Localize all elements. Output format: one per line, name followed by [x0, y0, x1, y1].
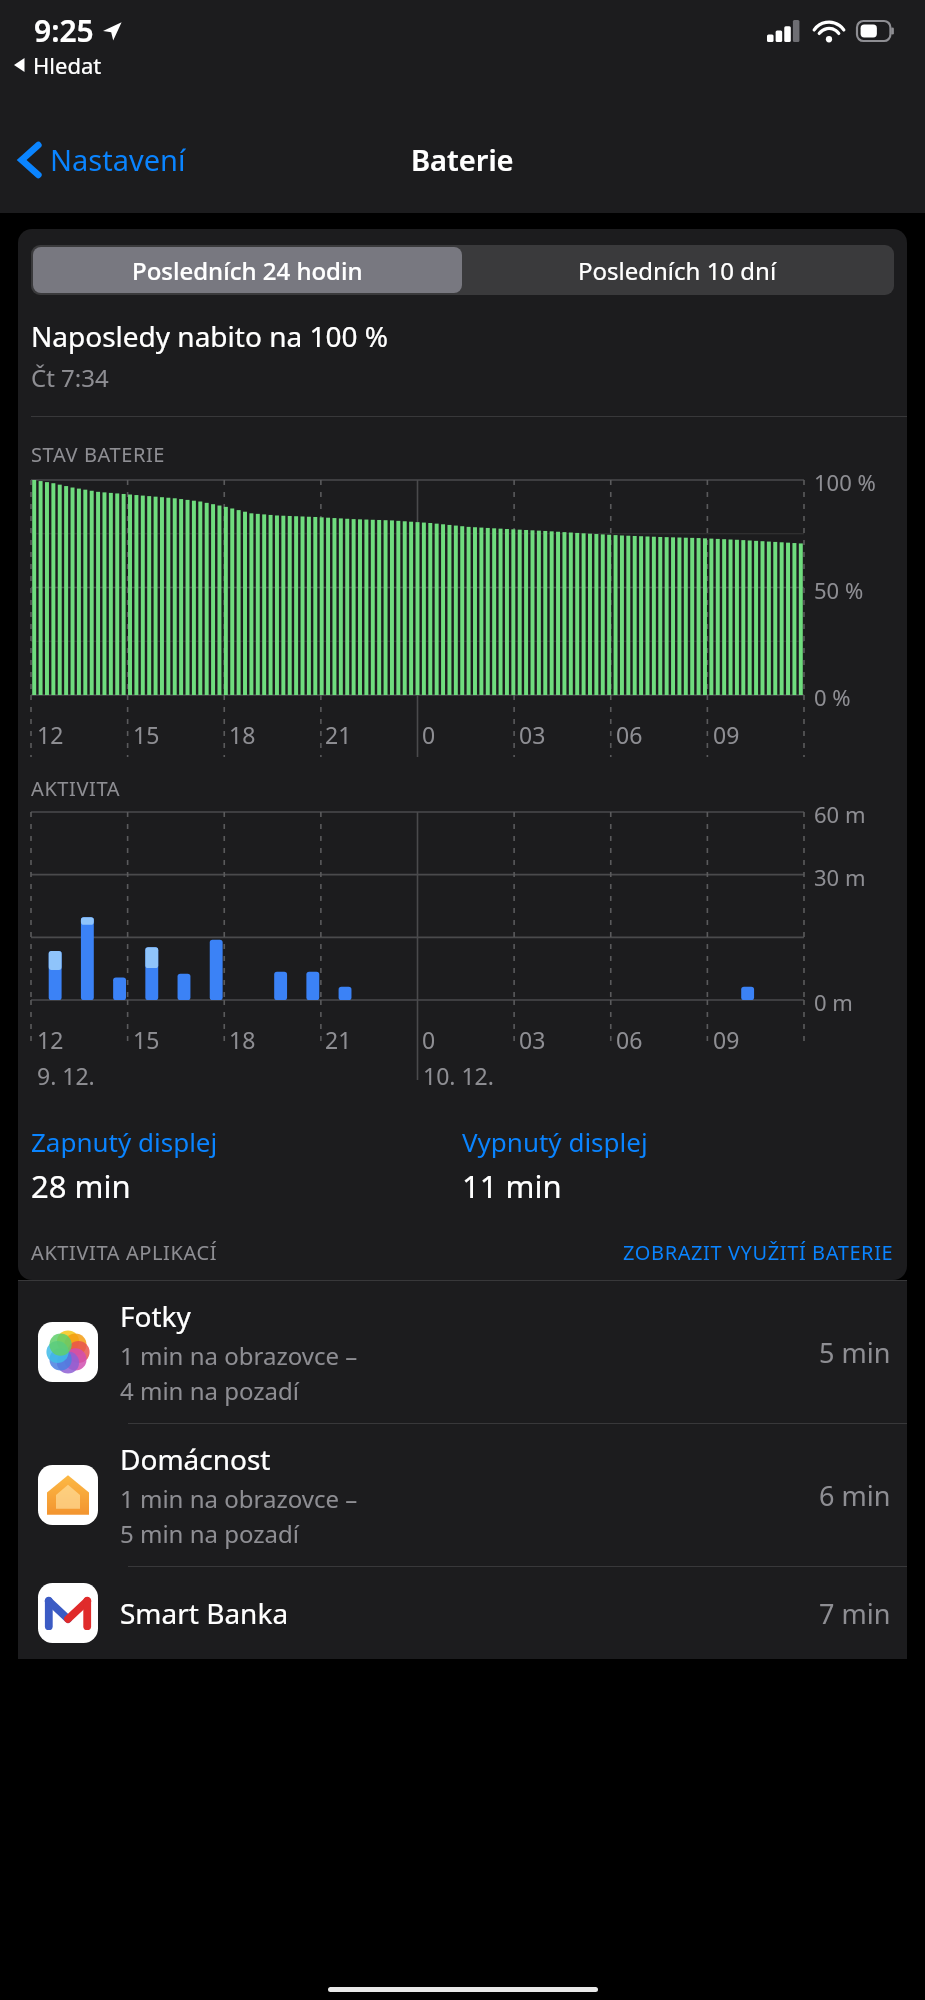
- staticText: Posledních 10 dní: [578, 254, 777, 287]
- staticText: 09: [713, 1024, 740, 1055]
- staticText: 0 %: [814, 682, 851, 712]
- staticText: 15: [133, 719, 160, 750]
- staticText: 5 min na pozadí: [120, 1517, 299, 1550]
- staticText: 0: [422, 1024, 436, 1055]
- staticText: 06: [616, 1024, 643, 1055]
- staticText: 21: [325, 1024, 352, 1055]
- staticText: 03: [519, 719, 546, 750]
- button[interactable]: Nastavení: [14, 132, 192, 187]
- staticText: 12: [37, 1024, 64, 1055]
- staticText: Zapnutý displej: [31, 1124, 218, 1159]
- staticText: AKTIVITA: [31, 775, 121, 802]
- button[interactable]: Domácnost: [18, 1424, 907, 1566]
- staticText: 30 m: [814, 862, 866, 892]
- staticText: 6 min: [819, 1477, 891, 1514]
- staticText: 60 m: [814, 799, 866, 829]
- staticText: Fotky: [120, 1297, 191, 1335]
- staticText: STAV BATERIE: [31, 441, 166, 468]
- staticText: 12: [37, 719, 64, 750]
- staticText: 9:25: [34, 10, 94, 51]
- staticText: Posledních 24 hodin: [132, 254, 363, 287]
- staticText: Domácnost: [120, 1440, 271, 1478]
- staticText: Čt 7:34: [31, 361, 109, 394]
- staticText: 18: [229, 719, 256, 750]
- staticText: 4 min na pozadí: [120, 1374, 299, 1407]
- staticText: Nastavení: [50, 140, 186, 179]
- button[interactable]: Smart Banka: [18, 1567, 907, 1659]
- button[interactable]: ZOBRAZIT VYUŽITÍ BATERIE: [623, 1239, 894, 1266]
- staticText: 28 min: [31, 1165, 131, 1207]
- staticText: 0: [422, 719, 436, 750]
- staticText: 10. 12.: [423, 1060, 494, 1091]
- staticText: Smart Banka: [120, 1594, 289, 1632]
- staticText: 100 %: [814, 467, 876, 497]
- staticText: 03: [519, 1024, 546, 1055]
- staticText: 9. 12.: [37, 1060, 95, 1091]
- staticText: Hledat: [33, 50, 102, 80]
- staticText: 7 min: [819, 1595, 891, 1632]
- staticText: 21: [325, 719, 352, 750]
- button[interactable]: Posledních 10 dní: [462, 247, 892, 293]
- staticText: Naposledy nabito na 100 %: [31, 317, 389, 355]
- staticText: 1 min na obrazovce –: [120, 1339, 358, 1372]
- staticText: 11 min: [462, 1165, 562, 1207]
- staticText: Baterie: [411, 140, 514, 179]
- staticText: 0 m: [814, 987, 853, 1017]
- staticText: 50 %: [814, 575, 864, 605]
- staticText: 09: [713, 719, 740, 750]
- staticText: 5 min: [819, 1334, 891, 1371]
- staticText: 06: [616, 719, 643, 750]
- staticText: AKTIVITA APLIKACÍ: [31, 1239, 218, 1266]
- staticText: 15: [133, 1024, 160, 1055]
- button[interactable]: Posledních 24 hodin: [33, 247, 462, 293]
- button[interactable]: Fotky: [18, 1281, 907, 1423]
- staticText: Vypnutý displej: [462, 1124, 648, 1159]
- staticText: ZOBRAZIT VYUŽITÍ BATERIE: [623, 1239, 894, 1266]
- staticText: 18: [229, 1024, 256, 1055]
- staticText: 1 min na obrazovce –: [120, 1482, 358, 1515]
